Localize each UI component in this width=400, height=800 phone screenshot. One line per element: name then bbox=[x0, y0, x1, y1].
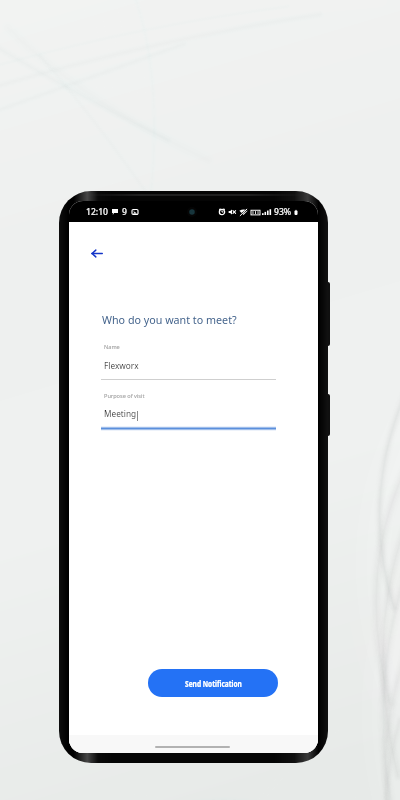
staticText: Name bbox=[104, 343, 120, 351]
button[interactable]: Back bbox=[79, 235, 115, 271]
staticText: 93% bbox=[274, 206, 292, 218]
staticText: Who do you want to meet? bbox=[102, 312, 237, 327]
staticText: 12:10 bbox=[86, 206, 109, 218]
staticText: Flexworx bbox=[104, 360, 139, 372]
staticText: Send Notification bbox=[185, 678, 242, 689]
staticText: Purpose of visit bbox=[104, 392, 145, 400]
button[interactable]: Send Notification bbox=[148, 669, 278, 697]
staticText: Meeting bbox=[104, 408, 137, 420]
staticText: 9 bbox=[122, 206, 127, 218]
